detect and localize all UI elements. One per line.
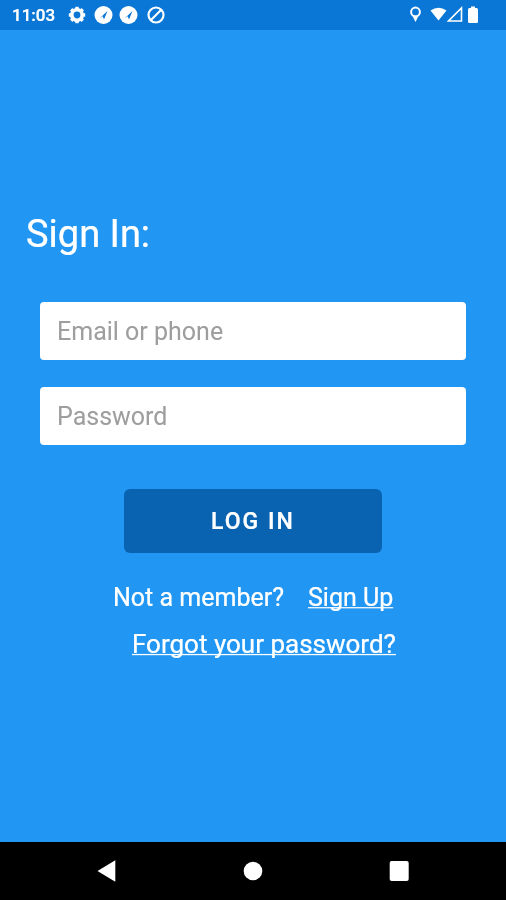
staticText: 11:03 <box>12 5 56 25</box>
button[interactable]: Forgot your password? <box>132 629 396 659</box>
staticText: Not a member? <box>113 583 284 612</box>
button[interactable] <box>229 847 277 895</box>
staticText: Password <box>57 402 168 431</box>
button[interactable] <box>80 847 128 895</box>
staticText: Email or phone <box>57 317 224 346</box>
button[interactable]: Password <box>40 387 466 445</box>
button[interactable]: Sign Up <box>308 583 394 612</box>
staticText: LOG IN <box>211 508 295 535</box>
button[interactable] <box>375 847 423 895</box>
staticText: Sign In: <box>26 212 151 257</box>
button[interactable]: LOG IN <box>124 489 382 553</box>
button[interactable]: Email or phone <box>40 302 466 360</box>
